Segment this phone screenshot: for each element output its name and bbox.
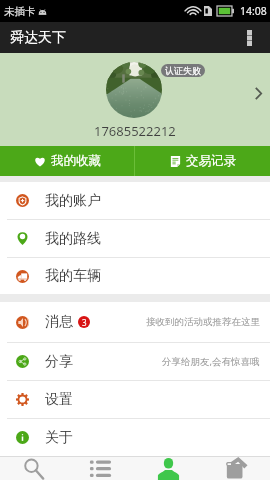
staticText: 舜达天下 [10,29,66,47]
button[interactable]: 消息 [0,302,270,342]
other: Profile details [255,87,262,100]
staticText: 未插卡 [4,5,36,18]
button[interactable]: 路线 [67,457,134,480]
staticText: 3 [82,317,87,328]
staticText: 分享给朋友,会有惊喜哦 [162,355,260,368]
staticText: 接收到的活动或推荐在这里 [146,316,260,328]
staticText: 关于 [45,429,73,447]
button[interactable]: 我的收藏 [0,146,134,176]
staticText: 设置 [45,391,73,409]
button[interactable]: 分享 [0,343,270,380]
button[interactable]: 我 [134,457,202,480]
staticText: 我的账户 [45,192,101,210]
staticText: 分享 [45,353,73,371]
button[interactable]: 关于 [0,419,270,456]
staticText: 认证失败 [165,65,201,76]
button[interactable]: 17685522212 [0,53,270,146]
staticText: 我的收藏 [51,153,101,169]
staticText: 交易记录 [186,153,236,169]
button[interactable]: More options [226,22,270,53]
button[interactable]: 找货 [0,457,67,480]
button[interactable]: 交易记录 [135,146,270,176]
staticText: 14:08 [240,4,267,18]
button[interactable]: 我的路线 [0,220,270,257]
staticText: 我的车辆 [45,267,101,285]
staticText: 我的路线 [45,230,101,248]
button[interactable]: 我的账户 [0,182,270,219]
button[interactable]: 百宝箱 [202,457,270,480]
staticText: 消息 [45,313,73,331]
staticText: 17685522212 [94,122,176,140]
button[interactable]: 我的车辆 [0,258,270,294]
button[interactable]: 设置 [0,381,270,418]
